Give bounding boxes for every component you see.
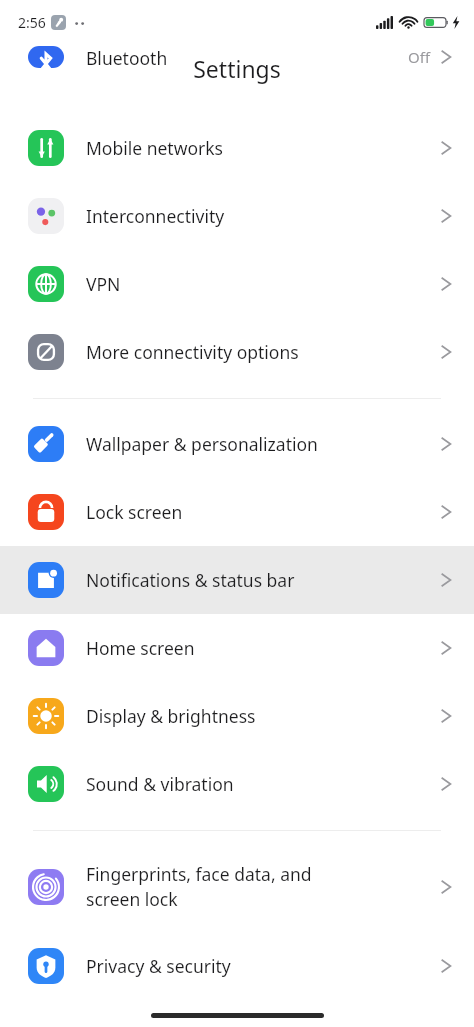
button[interactable]: Sound & vibration	[0, 750, 474, 818]
button[interactable]: VPN	[0, 250, 474, 318]
staticText: Home screen	[86, 636, 433, 660]
button[interactable]: Display & brightness	[0, 682, 474, 750]
staticText: Lock screen	[86, 500, 433, 524]
staticText: Fingerprints, face data, and screen lock	[86, 862, 433, 912]
staticText: Mobile networks	[86, 136, 433, 160]
staticText: More connectivity options	[86, 340, 433, 364]
staticText: Wallpaper & personalization	[86, 432, 433, 456]
button[interactable]: Mobile networks	[0, 114, 474, 182]
button[interactable]: Fingerprints, face data, and screen lock	[0, 842, 474, 932]
staticText: Display & brightness	[86, 704, 433, 728]
staticText: Interconnectivity	[86, 204, 433, 228]
staticText: Privacy & security	[86, 954, 433, 978]
staticText: Notifications & status bar	[86, 568, 433, 592]
staticText: 2:56	[18, 13, 46, 32]
staticText: Sound & vibration	[86, 772, 433, 796]
button[interactable]: Lock screen	[0, 478, 474, 546]
staticText: Settings	[193, 53, 281, 84]
staticText: VPN	[86, 272, 433, 296]
button[interactable]: Notifications & status bar	[0, 546, 474, 614]
button[interactable]: Wallpaper & personalization	[0, 410, 474, 478]
button[interactable]: More connectivity options	[0, 318, 474, 386]
staticText: Off	[408, 47, 431, 67]
staticText: Bluetooth	[86, 46, 408, 68]
button[interactable]: Interconnectivity	[0, 182, 474, 250]
button[interactable]: Privacy & security	[0, 932, 474, 1000]
button[interactable]: Home screen	[0, 614, 474, 682]
